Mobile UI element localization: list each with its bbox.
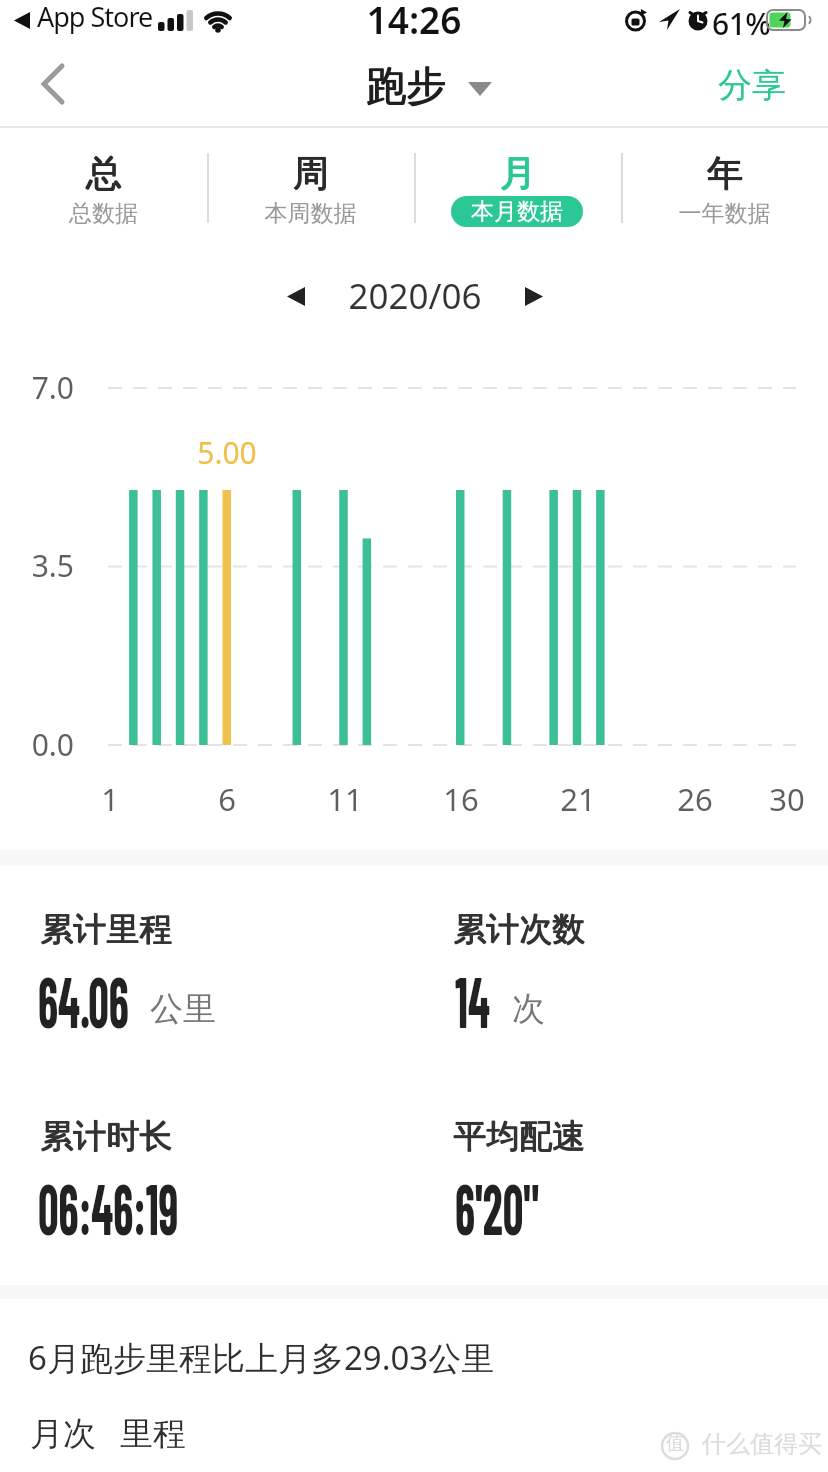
- staticText: 一年数据: [621, 199, 828, 228]
- button[interactable]: 周: [207, 142, 414, 238]
- staticText: 总: [1, 150, 208, 195]
- staticText: 月: [414, 151, 621, 196]
- staticText: 月次: [30, 1413, 96, 1455]
- staticText: 里程: [120, 1413, 186, 1455]
- staticText: 累计时长: [40, 1115, 172, 1157]
- staticText: 平均配速: [453, 1116, 585, 1158]
- button[interactable]: 跑步: [326, 58, 506, 110]
- staticText: 周: [207, 151, 414, 196]
- staticText: 06:46:19: [38, 1165, 179, 1249]
- staticText: 什么值得买: [702, 1429, 822, 1459]
- staticText: 周: [208, 151, 415, 196]
- staticText: 累计里程: [41, 909, 173, 951]
- staticText: 跑步: [327, 61, 487, 111]
- staticText: 累计次数: [453, 908, 585, 950]
- staticText: 年: [622, 150, 828, 195]
- staticText: 月: [415, 151, 622, 196]
- button[interactable]: [20, 54, 80, 114]
- staticText: 累计里程: [40, 908, 172, 950]
- staticText: 7.0: [14, 367, 74, 408]
- staticText: 累计时长: [40, 1116, 172, 1158]
- button[interactable]: [508, 270, 560, 322]
- staticText: 月: [415, 150, 622, 195]
- staticText: 总: [0, 150, 207, 195]
- staticText: 平均配速: [453, 1115, 585, 1157]
- staticText: 21: [538, 778, 618, 820]
- staticText: 26: [655, 778, 735, 820]
- staticText: 年: [622, 151, 828, 196]
- staticText: 累计时长: [41, 1115, 173, 1157]
- button[interactable]: [270, 270, 322, 322]
- staticText: 2020/06: [322, 272, 508, 320]
- staticText: 本周数据: [207, 199, 414, 228]
- staticText: 累计次数: [454, 909, 586, 951]
- button[interactable]: 总: [0, 142, 207, 238]
- staticText: 1: [70, 778, 150, 820]
- staticText: 5.00: [187, 432, 267, 473]
- staticText: App Store: [37, 0, 153, 35]
- staticText: 累计时长: [41, 1116, 173, 1158]
- staticText: 6月跑步里程比上月多29.03公里: [28, 1335, 495, 1380]
- staticText: 61%: [712, 3, 771, 44]
- staticText: 值: [666, 1432, 684, 1455]
- staticText: 周: [207, 150, 414, 195]
- staticText: 64.06: [38, 958, 129, 1042]
- staticText: 本月数据: [471, 197, 563, 226]
- button[interactable]: 月: [414, 142, 621, 238]
- staticText: 总: [0, 151, 207, 196]
- staticText: 公里: [150, 988, 216, 1030]
- staticText: 平均配速: [454, 1115, 586, 1157]
- staticText: 累计里程: [41, 908, 173, 950]
- staticText: 跑步: [327, 60, 487, 110]
- staticText: 平均配速: [454, 1116, 586, 1158]
- staticText: 14: [455, 958, 490, 1042]
- staticText: 6'20": [455, 1165, 539, 1249]
- staticText: 累计次数: [454, 908, 586, 950]
- staticText: 14:26: [354, 0, 474, 44]
- staticText: 总数据: [0, 199, 207, 228]
- staticText: 30: [747, 778, 827, 820]
- staticText: 累计里程: [40, 909, 172, 951]
- staticText: 周: [208, 150, 415, 195]
- staticText: 累计次数: [453, 909, 585, 951]
- staticText: 跑步: [326, 60, 486, 110]
- staticText: 跑步: [326, 61, 486, 111]
- button[interactable]: 分享: [700, 58, 808, 110]
- staticText: 16: [421, 778, 501, 820]
- staticText: 次: [512, 988, 545, 1030]
- staticText: 总: [1, 151, 208, 196]
- staticText: 分享: [718, 64, 786, 107]
- staticText: 月: [414, 150, 621, 195]
- staticText: 11: [305, 778, 385, 820]
- staticText: 年: [621, 150, 828, 195]
- button[interactable]: 年: [621, 142, 828, 238]
- staticText: 0.0: [14, 724, 74, 765]
- staticText: 3.5: [14, 545, 74, 586]
- staticText: 6: [187, 778, 267, 820]
- staticText: 年: [621, 151, 828, 196]
